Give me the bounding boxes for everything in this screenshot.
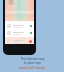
button[interactable]	[5, 30, 34, 36]
button[interactable]	[5, 37, 34, 44]
button[interactable]	[5, 23, 34, 29]
staticText: The ultimate way	[20, 57, 45, 61]
staticText: to plan trips	[24, 61, 41, 65]
staticText: travel with friends	[19, 66, 45, 70]
